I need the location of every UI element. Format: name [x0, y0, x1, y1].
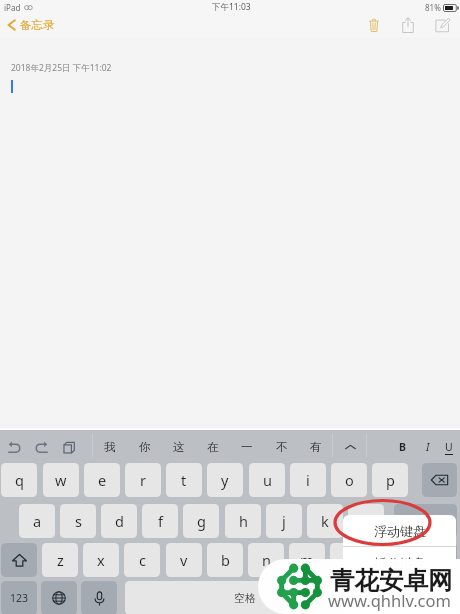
- staticText: x: [97, 550, 105, 570]
- staticText: l: [364, 511, 368, 531]
- staticText: B: [399, 440, 406, 454]
- button[interactable]: 在: [196, 430, 230, 464]
- button[interactable]: Hide keyboard: [369, 581, 457, 614]
- staticText: w: [55, 470, 67, 490]
- button[interactable]: r: [125, 463, 161, 497]
- staticText: 不: [276, 440, 288, 454]
- button[interactable]: Undo: [1, 430, 27, 464]
- staticText: 有: [310, 440, 322, 454]
- staticText: m: [300, 550, 314, 570]
- staticText: 青花安卓网: [330, 565, 453, 596]
- button[interactable]: Shift: [1, 543, 37, 577]
- staticText: t: [181, 470, 187, 490]
- button[interactable]: c: [124, 543, 160, 577]
- button[interactable]: 一: [230, 430, 264, 464]
- staticText: b: [221, 550, 230, 570]
- button[interactable]: v: [166, 543, 202, 577]
- staticText: o: [345, 470, 354, 490]
- staticText: z: [57, 550, 64, 570]
- button[interactable]: s: [60, 504, 96, 538]
- staticText: U: [445, 440, 453, 454]
- staticText: p: [386, 470, 395, 490]
- staticText: n: [262, 550, 271, 570]
- button[interactable]: y: [207, 463, 243, 497]
- button[interactable]: B: [389, 430, 415, 464]
- button[interactable]: 有: [299, 430, 333, 464]
- staticText: u: [263, 470, 272, 490]
- button[interactable]: 拆分键盘: [343, 547, 456, 578]
- staticText: s: [75, 511, 82, 531]
- staticText: 你: [139, 440, 151, 454]
- button[interactable]: x: [83, 543, 119, 577]
- staticText: 。: [385, 553, 396, 567]
- staticText: iPad: [4, 2, 21, 13]
- staticText: k: [321, 511, 329, 531]
- button[interactable]: m: [289, 543, 325, 577]
- button[interactable]: U: [438, 430, 460, 464]
- button[interactable]: Paste: [56, 430, 82, 464]
- staticText: 2018年2月25日 下午11:02: [11, 62, 112, 74]
- button[interactable]: i: [290, 463, 326, 497]
- button[interactable]: j: [266, 504, 302, 538]
- staticText: j: [282, 511, 286, 531]
- button[interactable]: q: [1, 463, 37, 497]
- staticText: e: [98, 470, 107, 490]
- button[interactable]: o: [331, 463, 367, 497]
- button[interactable]: I: [417, 430, 439, 464]
- button[interactable]: l: [348, 504, 384, 538]
- staticText: g: [197, 511, 206, 531]
- staticText: r: [140, 470, 146, 490]
- button[interactable]: Backspace: [422, 463, 457, 497]
- button[interactable]: e: [84, 463, 120, 497]
- staticText: h: [239, 511, 248, 531]
- button[interactable]: n: [248, 543, 284, 577]
- staticText: 123: [10, 591, 29, 605]
- button[interactable]: 。: [372, 543, 408, 577]
- button[interactable]: g: [183, 504, 219, 538]
- staticText: 空格: [234, 591, 256, 605]
- button[interactable]: f: [142, 504, 178, 538]
- button[interactable]: a: [19, 504, 55, 538]
- button[interactable]: Delete note: [357, 13, 391, 37]
- button[interactable]: 备忘录: [0, 13, 63, 37]
- button[interactable]: b: [207, 543, 243, 577]
- button[interactable]: t: [166, 463, 202, 497]
- button[interactable]: Share: [391, 13, 425, 37]
- staticText: a: [33, 511, 42, 531]
- staticText: 备忘录: [20, 18, 55, 32]
- button[interactable]: d: [101, 504, 137, 538]
- staticText: 一: [241, 440, 253, 454]
- staticText: f: [158, 511, 163, 531]
- staticText: c: [139, 550, 146, 570]
- button[interactable]: k: [307, 504, 343, 538]
- button[interactable]: 我: [93, 430, 127, 464]
- staticText: www.qhhlv.com: [328, 589, 451, 611]
- staticText: 换行: [415, 514, 437, 528]
- staticText: q: [15, 470, 24, 490]
- staticText: 在: [207, 440, 219, 454]
- button[interactable]: w: [43, 463, 79, 497]
- button[interactable]: Redo: [28, 430, 54, 464]
- staticText: 我: [104, 440, 116, 454]
- button[interactable]: New note: [425, 13, 459, 37]
- button[interactable]: More candidates: [336, 430, 364, 464]
- button[interactable]: h: [225, 504, 261, 538]
- button[interactable]: 不: [265, 430, 299, 464]
- button[interactable]: 你: [128, 430, 162, 464]
- button[interactable]: Dictation: [81, 581, 117, 614]
- button[interactable]: Return: [394, 504, 457, 538]
- staticText: I: [426, 440, 430, 454]
- button[interactable]: p: [372, 463, 408, 497]
- button[interactable]: 这: [162, 430, 196, 464]
- button[interactable]: z: [42, 543, 78, 577]
- button[interactable]: u: [249, 463, 285, 497]
- staticText: 浮动键盘: [374, 523, 426, 539]
- button[interactable]: Space: [125, 581, 365, 614]
- button[interactable]: Switch language: [41, 581, 77, 614]
- button[interactable]: ，: [330, 543, 366, 577]
- button[interactable]: 123: [1, 581, 37, 614]
- staticText: v: [180, 550, 188, 570]
- button[interactable]: Shift right: [421, 543, 457, 577]
- button[interactable]: 浮动键盘: [343, 515, 456, 546]
